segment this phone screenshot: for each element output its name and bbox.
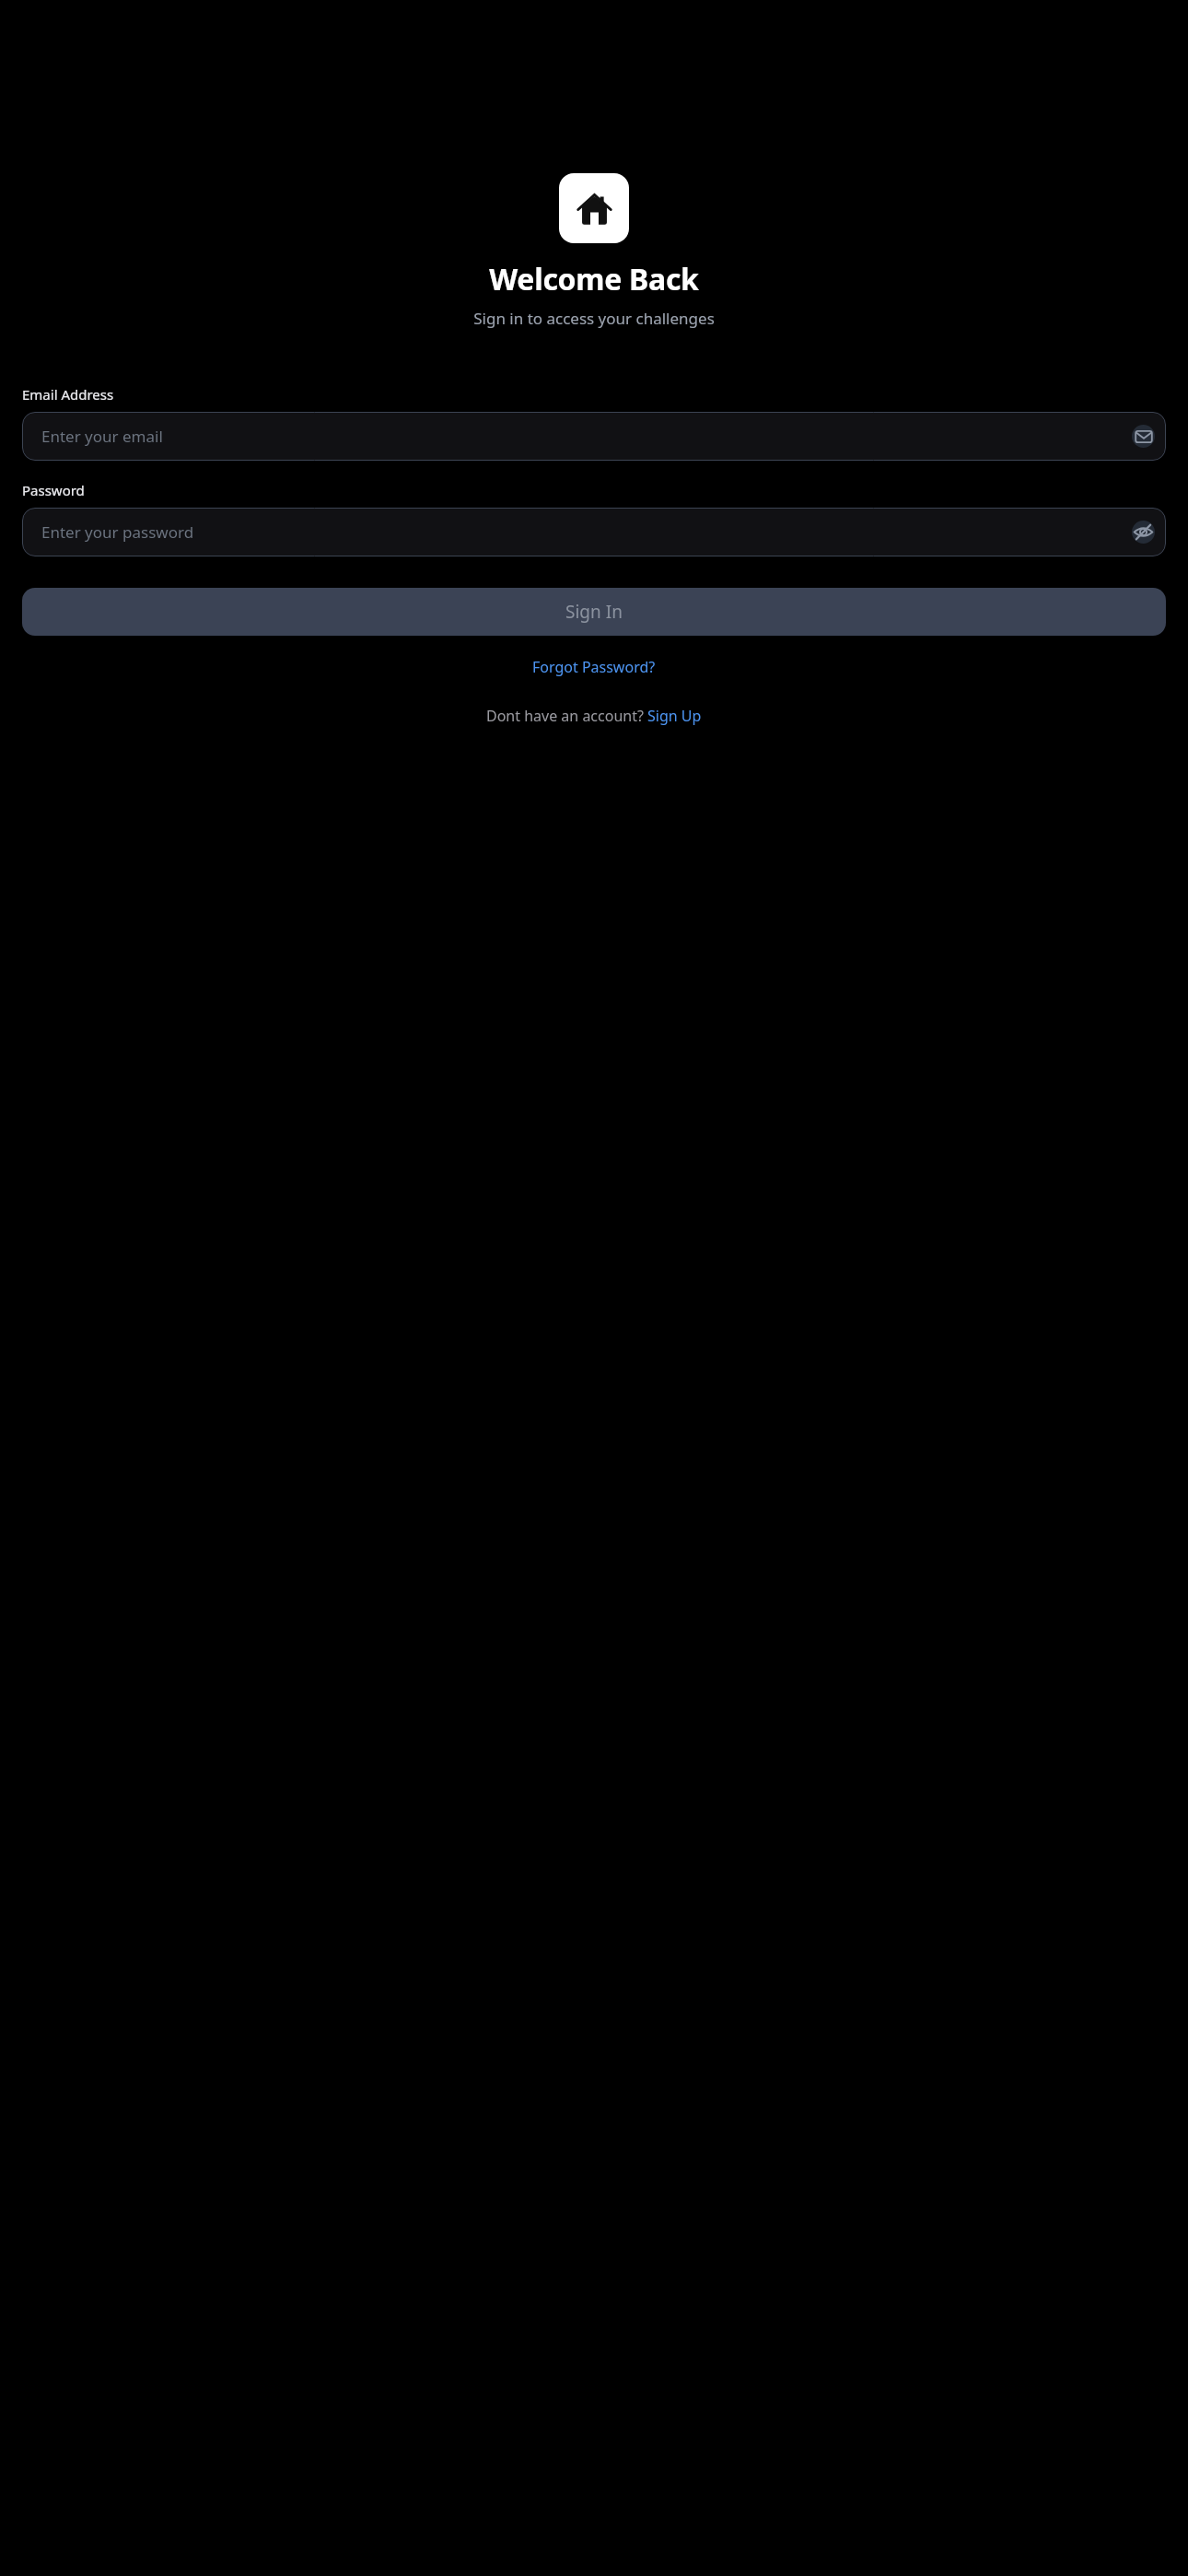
staticText: Sign In xyxy=(565,600,623,624)
staticText: Dont have an account? Sign Up xyxy=(486,706,702,726)
staticText: Email Address xyxy=(22,385,114,404)
button[interactable]: Dont have an account? Sign Up xyxy=(479,701,709,731)
button[interactable]: Enter your password xyxy=(22,508,1166,556)
button[interactable]: Email xyxy=(1132,425,1155,448)
button[interactable]: Enter your email xyxy=(22,412,1166,461)
staticText: Welcome Back xyxy=(489,259,699,299)
button[interactable]: Forgot Password? xyxy=(525,651,663,683)
staticText: Enter your email xyxy=(41,426,163,447)
staticText: Enter your password xyxy=(41,521,194,543)
staticText: Forgot Password? xyxy=(532,657,656,677)
staticText: Sign in to access your challenges xyxy=(473,308,715,329)
button[interactable]: Sign In xyxy=(22,588,1166,636)
button[interactable]: Show password xyxy=(1132,521,1155,544)
staticText: Password xyxy=(22,481,85,499)
